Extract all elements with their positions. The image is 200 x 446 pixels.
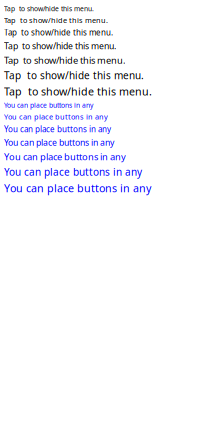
staticText: Tap to show/hide this menu. — [4, 40, 116, 52]
staticText: Tap to show/hide this menu. — [4, 4, 94, 13]
staticText: You can place buttons in any — [4, 181, 151, 195]
staticText: You can place buttons in any — [4, 124, 111, 135]
staticText: Tap to show/hide this menu. — [4, 84, 152, 99]
staticText: Tap to show/hide this menu. — [4, 15, 108, 25]
staticText: Tap to show/hide this menu. — [4, 54, 126, 66]
staticText: You can place buttons in any — [4, 137, 114, 148]
staticText: Tap to show/hide this menu. — [4, 68, 144, 82]
staticText: You can place buttons in any — [4, 101, 93, 110]
staticText: You can place buttons in any — [4, 112, 108, 122]
staticText: Tap to show/hide this menu. — [4, 27, 113, 38]
staticText: You can place buttons in any — [4, 150, 126, 163]
staticText: You can place buttons in any — [4, 165, 142, 179]
